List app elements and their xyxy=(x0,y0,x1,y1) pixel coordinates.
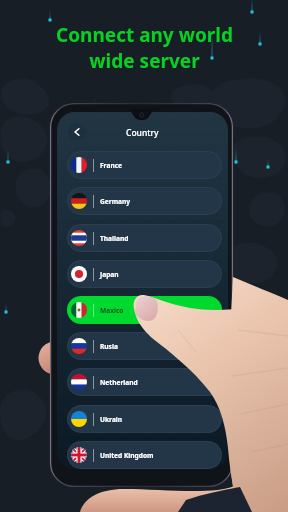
staticText: Germany xyxy=(100,197,131,206)
staticText: France xyxy=(100,161,123,170)
staticText: Country xyxy=(126,127,159,139)
staticText: Connect any world wide server xyxy=(56,22,233,74)
staticText: Thailand xyxy=(100,234,129,243)
button[interactable]: Back xyxy=(68,123,86,141)
button[interactable]: Ukrain xyxy=(67,405,222,433)
staticText: Rusia xyxy=(100,342,118,351)
button[interactable]: Maxico xyxy=(67,296,222,324)
button[interactable]: Rusia xyxy=(67,332,222,360)
staticText: Netherland xyxy=(100,378,138,387)
button[interactable]: Germany xyxy=(67,187,222,215)
button[interactable]: Netherland xyxy=(67,368,222,396)
staticText: Japan xyxy=(100,270,119,279)
staticText: Ukrain xyxy=(100,415,123,424)
staticText: United Kingdom xyxy=(100,451,154,460)
staticText: Maxico xyxy=(100,306,124,315)
button[interactable]: Japan xyxy=(67,260,222,288)
button[interactable]: Thailand xyxy=(67,224,222,252)
button[interactable]: France xyxy=(67,151,222,179)
button[interactable]: United Kingdom xyxy=(67,441,222,469)
